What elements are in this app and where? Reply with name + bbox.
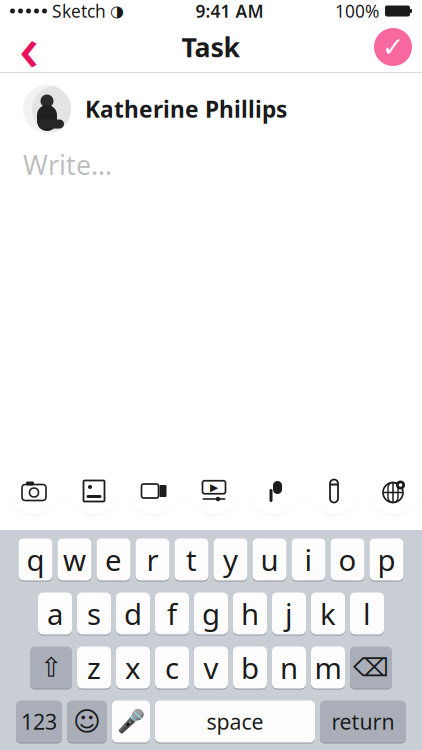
staticText: j: [285, 594, 293, 633]
button[interactable]: f: [155, 591, 189, 636]
button[interactable]: x: [116, 645, 150, 690]
button[interactable]: c: [155, 645, 189, 690]
staticText: u: [260, 540, 278, 579]
staticText: s: [87, 594, 101, 633]
staticText: 🎤: [117, 709, 145, 734]
button[interactable]: p: [369, 537, 403, 582]
button[interactable]: return: [320, 699, 406, 744]
button[interactable]: a: [38, 591, 72, 636]
staticText: l: [363, 594, 371, 633]
staticText: ⇧: [40, 652, 62, 683]
staticText: return: [331, 707, 394, 736]
button[interactable]: Audio: [248, 464, 300, 518]
staticText: m: [314, 648, 341, 687]
staticText: x: [125, 648, 141, 687]
button[interactable]: 123: [16, 699, 62, 744]
staticText: Katherine Phillips: [85, 94, 287, 124]
staticText: h: [241, 594, 259, 633]
staticText: Task: [181, 29, 240, 65]
button[interactable]: ☺: [67, 699, 107, 744]
button[interactable]: j: [272, 591, 306, 636]
button[interactable]: v: [194, 645, 228, 690]
staticText: f: [167, 594, 177, 633]
staticText: n: [280, 648, 298, 687]
staticText: 123: [21, 707, 57, 736]
staticText: y: [223, 540, 238, 579]
staticText: Sketch: [52, 0, 106, 22]
staticText: ◑: [110, 2, 124, 20]
button[interactable]: Camera: [8, 464, 60, 518]
button[interactable]: u: [252, 537, 286, 582]
button[interactable]: k: [311, 591, 345, 636]
button[interactable]: ⇧: [30, 645, 72, 690]
button[interactable]: q: [18, 537, 52, 582]
staticText: 100%: [335, 0, 379, 22]
staticText: g: [202, 594, 220, 633]
staticText: ▶: [210, 481, 218, 493]
staticText: ‹: [19, 6, 39, 88]
button[interactable]: o: [330, 537, 364, 582]
button[interactable]: n: [272, 645, 306, 690]
staticText: v: [203, 648, 218, 687]
staticText: q: [26, 540, 44, 579]
staticText: k: [320, 594, 336, 633]
button[interactable]: b: [233, 645, 267, 690]
button[interactable]: y: [213, 537, 247, 582]
staticText: 9:41 AM: [195, 0, 263, 22]
button[interactable]: d: [116, 591, 150, 636]
button[interactable]: e: [96, 537, 130, 582]
staticText: a: [47, 594, 63, 633]
button[interactable]: h: [233, 591, 267, 636]
button[interactable]: w: [57, 537, 91, 582]
staticText: Write…: [23, 147, 112, 182]
staticText: i: [304, 540, 312, 579]
staticText: r: [146, 540, 158, 579]
button[interactable]: ⌫: [350, 645, 392, 690]
button[interactable]: Media: [188, 464, 240, 518]
staticText: z: [87, 648, 101, 687]
staticText: d: [124, 594, 142, 633]
button[interactable]: Back: [4, 22, 54, 72]
staticText: ☺: [73, 706, 101, 737]
staticText: b: [241, 648, 259, 687]
button[interactable]: m: [311, 645, 345, 690]
staticText: t: [186, 540, 197, 579]
button[interactable]: Video: [128, 464, 180, 518]
button[interactable]: r: [135, 537, 169, 582]
button[interactable]: Photo: [68, 464, 120, 518]
staticText: c: [165, 648, 179, 687]
button[interactable]: z: [77, 645, 111, 690]
button[interactable]: Location: [368, 464, 420, 518]
button[interactable]: Draw: [308, 464, 360, 518]
staticText: p: [377, 540, 395, 579]
button[interactable]: 🎤: [112, 699, 150, 744]
button[interactable]: Done: [368, 22, 418, 72]
button[interactable]: s: [77, 591, 111, 636]
staticText: e: [105, 540, 122, 579]
staticText: ⌫: [353, 653, 389, 682]
button[interactable]: space: [155, 699, 315, 744]
staticText: ✓: [382, 32, 404, 62]
staticText: space: [206, 707, 263, 736]
button[interactable]: t: [174, 537, 208, 582]
button[interactable]: g: [194, 591, 228, 636]
staticText: w: [63, 540, 86, 579]
staticText: o: [338, 540, 356, 579]
button[interactable]: i: [291, 537, 325, 582]
button[interactable]: l: [350, 591, 384, 636]
